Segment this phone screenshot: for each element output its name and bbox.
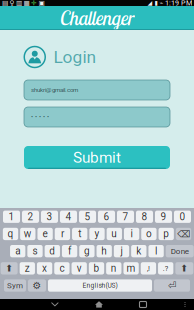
button[interactable]: c [54, 262, 69, 274]
button[interactable]: 3 [41, 211, 58, 223]
staticText: Login [53, 47, 96, 67]
staticText: c [59, 262, 64, 274]
button[interactable]: English(US) [48, 279, 152, 292]
button[interactable]: z [20, 262, 35, 274]
staticText: 5 [84, 211, 90, 223]
staticText: o [146, 228, 152, 240]
staticText: w [24, 228, 32, 240]
staticText: h [101, 245, 107, 257]
staticText: ⬆ [5, 263, 13, 274]
button[interactable]: n [106, 262, 121, 274]
staticText: ⏎ [168, 280, 176, 291]
button[interactable]: 4 [60, 211, 77, 223]
button[interactable]: u [107, 228, 122, 240]
button[interactable]: ⌫ [176, 228, 191, 240]
staticText: f [68, 245, 71, 257]
button[interactable]: r [55, 228, 70, 240]
staticText: i [131, 228, 133, 240]
button[interactable]: b [89, 262, 104, 274]
staticText: • • • • • [31, 113, 49, 121]
button[interactable]: t [72, 228, 87, 240]
staticText: 1 [8, 211, 14, 223]
button[interactable]: k [131, 245, 146, 257]
staticText: l [155, 245, 157, 257]
button[interactable]: Done [166, 245, 194, 257]
staticText: ⚙ [32, 280, 41, 291]
button[interactable]: Sym [4, 279, 26, 292]
button[interactable]: 6 [98, 211, 115, 223]
button[interactable]: 9 [155, 211, 172, 223]
button[interactable]: q [3, 228, 18, 240]
button[interactable]: 1 [3, 211, 20, 223]
staticText: q [7, 228, 13, 240]
button[interactable]: Home [77, 299, 121, 310]
staticText: 8 [141, 211, 147, 223]
staticText: r [61, 228, 64, 240]
button[interactable]: ,! [141, 262, 156, 274]
button[interactable]: 5 [79, 211, 96, 223]
staticText: ♀ [9, 0, 14, 7]
button[interactable]: i [124, 228, 139, 240]
staticText: m [127, 262, 136, 274]
button[interactable]: v [71, 262, 87, 274]
button[interactable]: h [96, 245, 112, 257]
staticText: 3 [46, 211, 52, 223]
button[interactable]: j [114, 245, 129, 257]
button[interactable]: o [141, 228, 156, 240]
staticText: English(US) [82, 282, 117, 289]
staticText: k [136, 245, 141, 257]
staticText: ✛ [31, 0, 37, 7]
button[interactable]: m [123, 262, 139, 274]
button[interactable]: a [10, 245, 25, 257]
button[interactable]: d [45, 245, 60, 257]
staticText: 4 [65, 211, 71, 223]
button[interactable]: Recent apps [121, 299, 165, 310]
staticText: n [111, 262, 117, 274]
button[interactable]: s [27, 245, 43, 257]
staticText: .? [163, 264, 169, 273]
staticText: x [42, 262, 47, 274]
button[interactable]: l [148, 245, 164, 257]
button[interactable]: 7 [117, 211, 134, 223]
button[interactable]: .? [158, 262, 173, 274]
staticText: b [93, 262, 99, 274]
staticText: Done [171, 246, 189, 256]
staticText: Sym [7, 281, 23, 290]
staticText: 9 [160, 211, 166, 223]
staticText: d [49, 245, 55, 257]
button[interactable]: 0 [174, 211, 191, 223]
staticText: ⌫ [177, 228, 190, 239]
staticText: g [84, 245, 90, 257]
staticText: ⬆ [180, 263, 188, 274]
staticText: ▣ [38, 0, 44, 7]
staticText: 1:19 PM [165, 0, 192, 7]
button[interactable]: x [37, 262, 52, 274]
button[interactable]: Hide keyboard [0, 299, 77, 310]
staticText: p [163, 228, 169, 240]
staticText: z [25, 262, 30, 274]
button[interactable]: More options [176, 299, 194, 310]
button[interactable]: ⬆ [1, 262, 18, 274]
button[interactable]: e [37, 228, 53, 240]
staticText: Challenger [60, 6, 134, 30]
staticText: 0 [179, 211, 185, 223]
button[interactable]: y [89, 228, 105, 240]
button[interactable]: 8 [136, 211, 153, 223]
button[interactable]: 2 [22, 211, 39, 223]
staticText: y [94, 228, 99, 240]
button[interactable]: g [79, 245, 94, 257]
staticText: t [78, 228, 81, 240]
button[interactable]: ⬆ [175, 262, 193, 274]
button[interactable]: w [20, 228, 35, 240]
staticText: u [111, 228, 117, 240]
button[interactable]: ⏎ [154, 279, 190, 292]
staticText: v [77, 262, 82, 274]
button[interactable]: f [62, 245, 77, 257]
button[interactable]: p [159, 228, 174, 240]
button[interactable]: ⚙ [28, 279, 46, 292]
staticText: a [15, 245, 20, 257]
staticText: 6 [103, 211, 109, 223]
button[interactable]: Submit [24, 146, 170, 169]
staticText: Submit [73, 148, 121, 166]
staticText: s [32, 245, 37, 257]
